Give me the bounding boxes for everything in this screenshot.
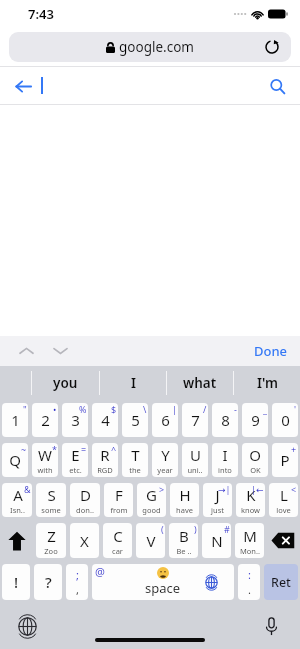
- button[interactable]: B: [169, 523, 198, 558]
- button[interactable]: H: [170, 483, 199, 517]
- staticText: 5: [131, 410, 140, 430]
- staticText: Q: [9, 450, 21, 470]
- staticText: etc.: [69, 465, 82, 475]
- staticText: (: [161, 523, 164, 535]
- button[interactable]: 9: [242, 403, 268, 437]
- button[interactable]: F: [104, 483, 133, 517]
- staticText: Ret: [271, 574, 291, 591]
- staticText: with: [37, 465, 53, 475]
- button[interactable]: Q: [2, 443, 28, 477]
- staticText: M: [243, 526, 257, 546]
- staticText: =: [81, 443, 87, 455]
- button[interactable]: X: [70, 523, 99, 558]
- staticText: K: [246, 485, 256, 505]
- staticText: &: [24, 483, 31, 495]
- staticText: have: [176, 505, 193, 515]
- button[interactable]: Done: [254, 342, 288, 360]
- button[interactable]: J: [203, 483, 232, 517]
- staticText: 6: [161, 410, 170, 430]
- staticText: 2: [41, 410, 50, 430]
- staticText: RGD: [97, 465, 113, 475]
- staticText: ": [23, 403, 27, 415]
- button[interactable]: E: [62, 443, 88, 477]
- button[interactable]: Shift: [0, 520, 34, 561]
- button[interactable]: 1: [2, 403, 28, 437]
- button[interactable]: L: [269, 483, 298, 517]
- button[interactable]: Back: [8, 71, 38, 101]
- staticText: P: [280, 450, 290, 470]
- button[interactable]: 0: [272, 403, 298, 437]
- button[interactable]: O: [242, 443, 268, 477]
- staticText: ): [194, 523, 197, 535]
- staticText: the: [129, 465, 141, 475]
- staticText: $: [111, 403, 117, 415]
- button[interactable]: 3: [62, 403, 88, 437]
- button[interactable]: Search: [262, 71, 292, 101]
- button[interactable]: I: [100, 366, 166, 400]
- button[interactable]: W: [32, 443, 58, 477]
- button[interactable]: P: [272, 443, 298, 477]
- button[interactable]: !: [2, 564, 30, 600]
- staticText: love: [276, 505, 291, 515]
- button[interactable]: 6: [152, 403, 178, 437]
- staticText: ': [294, 403, 297, 415]
- staticText: year: [157, 465, 173, 475]
- staticText: |←: [251, 483, 264, 495]
- staticText: some: [41, 505, 61, 515]
- staticText: I: [222, 445, 228, 465]
- button[interactable]: Next: [48, 339, 72, 363]
- button[interactable]: I'm: [234, 366, 300, 400]
- button[interactable]: Z: [36, 523, 66, 558]
- button[interactable]: Y: [152, 443, 178, 477]
- button[interactable]: ?: [34, 564, 62, 600]
- staticText: Z: [47, 526, 56, 546]
- staticText: 7:43: [28, 5, 54, 23]
- button[interactable]: A: [2, 483, 32, 517]
- button[interactable]: 4: [92, 403, 118, 437]
- staticText: !: [14, 572, 19, 592]
- button[interactable]: ;: [66, 564, 88, 600]
- button[interactable]: I: [212, 443, 238, 477]
- button[interactable]: 7: [182, 403, 208, 437]
- button[interactable]: T: [122, 443, 148, 477]
- button[interactable]: M: [235, 523, 264, 558]
- button[interactable]: Ret: [264, 564, 298, 600]
- staticText: Zoo: [44, 546, 58, 556]
- button[interactable]: Backspace: [266, 520, 300, 561]
- staticText: 7: [191, 410, 200, 430]
- button[interactable]: Reload: [261, 36, 283, 58]
- button[interactable]: N: [202, 523, 231, 558]
- button[interactable]: G: [137, 483, 166, 517]
- staticText: E: [71, 445, 80, 465]
- staticText: X: [80, 531, 89, 551]
- button[interactable]: C: [103, 523, 132, 558]
- button[interactable]: @: [92, 564, 234, 600]
- button[interactable]: Dictate: [258, 613, 284, 639]
- button[interactable]: what: [167, 366, 233, 400]
- staticText: <: [291, 483, 297, 495]
- staticText: Y: [161, 445, 170, 465]
- staticText: >: [159, 483, 165, 495]
- button[interactable]: V: [136, 523, 165, 558]
- button[interactable]: google.com: [9, 32, 291, 62]
- button[interactable]: Previous: [14, 339, 38, 363]
- staticText: what: [183, 374, 217, 392]
- button[interactable]: R: [92, 443, 118, 477]
- staticText: C: [113, 526, 123, 546]
- button[interactable]: 8: [212, 403, 238, 437]
- staticText: +: [291, 443, 297, 455]
- button[interactable]: :: [238, 564, 260, 600]
- button[interactable]: S: [36, 483, 66, 517]
- button[interactable]: U: [182, 443, 208, 477]
- button[interactable]: 2: [32, 403, 58, 437]
- button[interactable]: you: [32, 366, 99, 400]
- staticText: \: [143, 403, 147, 415]
- button[interactable]: 5: [122, 403, 148, 437]
- staticText: %: [79, 403, 87, 415]
- staticText: car: [112, 546, 123, 556]
- staticText: Isn..: [10, 505, 25, 515]
- button[interactable]: D: [70, 483, 100, 517]
- staticText: /: [203, 403, 207, 415]
- button[interactable]: K: [236, 483, 265, 517]
- button[interactable]: Switch keyboard: [14, 613, 40, 639]
